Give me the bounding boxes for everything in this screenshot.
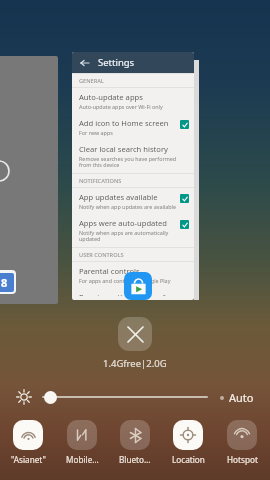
staticText: Apps were auto-updated <box>79 218 168 228</box>
staticText: NOTIFICATIONS <box>79 177 122 185</box>
staticText: Blueto… <box>119 454 151 465</box>
staticText: "Asianet" <box>11 454 46 465</box>
staticText: Notify when app updates are available <box>79 203 176 210</box>
button[interactable]: Parental controls <box>72 262 194 288</box>
staticText: USER CONTROLS <box>79 251 124 259</box>
other: Mobile data <box>74 427 90 443</box>
other: Wi-Fi <box>20 427 37 444</box>
staticText: For new apps <box>79 129 113 136</box>
button[interactable]: Require authentication for purchases <box>72 288 194 300</box>
button[interactable]: Auto <box>220 390 254 405</box>
button[interactable]: App updates available <box>72 188 194 214</box>
button[interactable]: Back <box>78 56 91 69</box>
staticText: Auto <box>229 390 254 405</box>
staticText: Location <box>172 454 205 465</box>
staticText: App updates available <box>79 192 158 202</box>
staticText: Add icon to Home screen <box>79 118 169 128</box>
button[interactable]: Add icon to Home screen <box>72 114 194 140</box>
staticText: Parental controls <box>79 266 140 276</box>
staticText: Auto-update apps over Wi-Fi only <box>79 103 163 110</box>
button[interactable]: Mobile hotspot <box>217 418 267 465</box>
button[interactable]: Close all <box>118 317 152 351</box>
button[interactable]: Wi-Fi <box>3 418 53 465</box>
staticText: Require authentication for purchases <box>79 292 189 296</box>
button[interactable]: Google Play Store <box>124 272 152 300</box>
staticText: 8 <box>1 275 8 290</box>
staticText: Clear local search history <box>79 144 168 154</box>
staticText: Auto-update apps <box>79 92 143 102</box>
staticText: Remove searches you have performed from … <box>79 155 189 169</box>
button[interactable]: Back <box>72 52 194 300</box>
staticText: GENERAL <box>79 77 104 85</box>
other: Bluetooth <box>128 428 143 443</box>
button[interactable]: 8 <box>0 56 58 304</box>
button[interactable]: Checkbox <box>180 194 189 203</box>
other: Location <box>180 427 196 443</box>
button[interactable]: Mobile data <box>57 418 107 465</box>
staticText: Settings <box>98 56 135 69</box>
other: Brightness <box>16 389 32 405</box>
button[interactable] <box>42 386 208 408</box>
button[interactable]: Checkbox <box>180 120 189 129</box>
button[interactable]: Apps were auto-updated <box>72 214 194 247</box>
button[interactable]: Clear local search history <box>72 140 194 173</box>
staticText: Notify when apps are automatically updat… <box>79 229 176 243</box>
button[interactable]: Bluetooth <box>110 418 160 465</box>
button[interactable]: Auto-update apps <box>72 88 194 114</box>
staticText: Hotspot <box>227 454 258 465</box>
button[interactable]: Checkbox <box>180 220 189 229</box>
staticText: Mobile… <box>66 454 99 465</box>
button[interactable]: Location <box>163 418 213 465</box>
other: Mobile hotspot <box>234 427 250 443</box>
staticText: 1.4Gfree|2.0G <box>103 357 167 370</box>
staticText: For apps and content in Google Play <box>79 277 171 284</box>
